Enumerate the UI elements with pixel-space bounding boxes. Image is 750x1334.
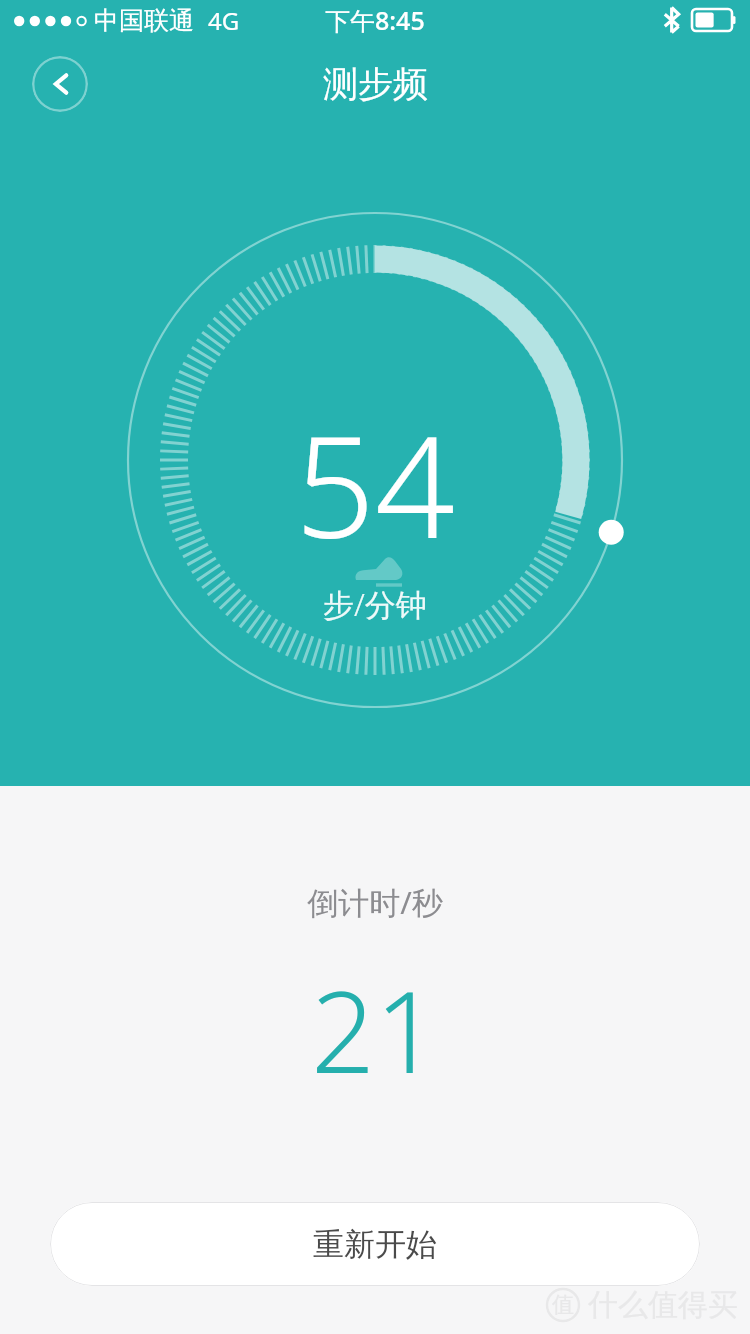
staticText: 重新开始 <box>313 1225 437 1264</box>
staticText: 测步频 <box>323 62 428 106</box>
staticText: 值 <box>552 1291 574 1319</box>
staticText: 步/分钟 <box>323 583 427 625</box>
button[interactable]: Back <box>32 56 88 112</box>
staticText: 什么值得买 <box>588 1286 738 1324</box>
staticText: 倒计时/秒 <box>307 881 443 923</box>
staticText: 中国联通 <box>94 5 194 36</box>
staticText: 21 <box>311 953 439 1106</box>
staticText: 下午8:45 <box>325 3 425 37</box>
staticText: 4G <box>208 4 240 37</box>
button[interactable]: 重新开始 <box>50 1202 700 1286</box>
staticText: 54 <box>295 388 455 579</box>
